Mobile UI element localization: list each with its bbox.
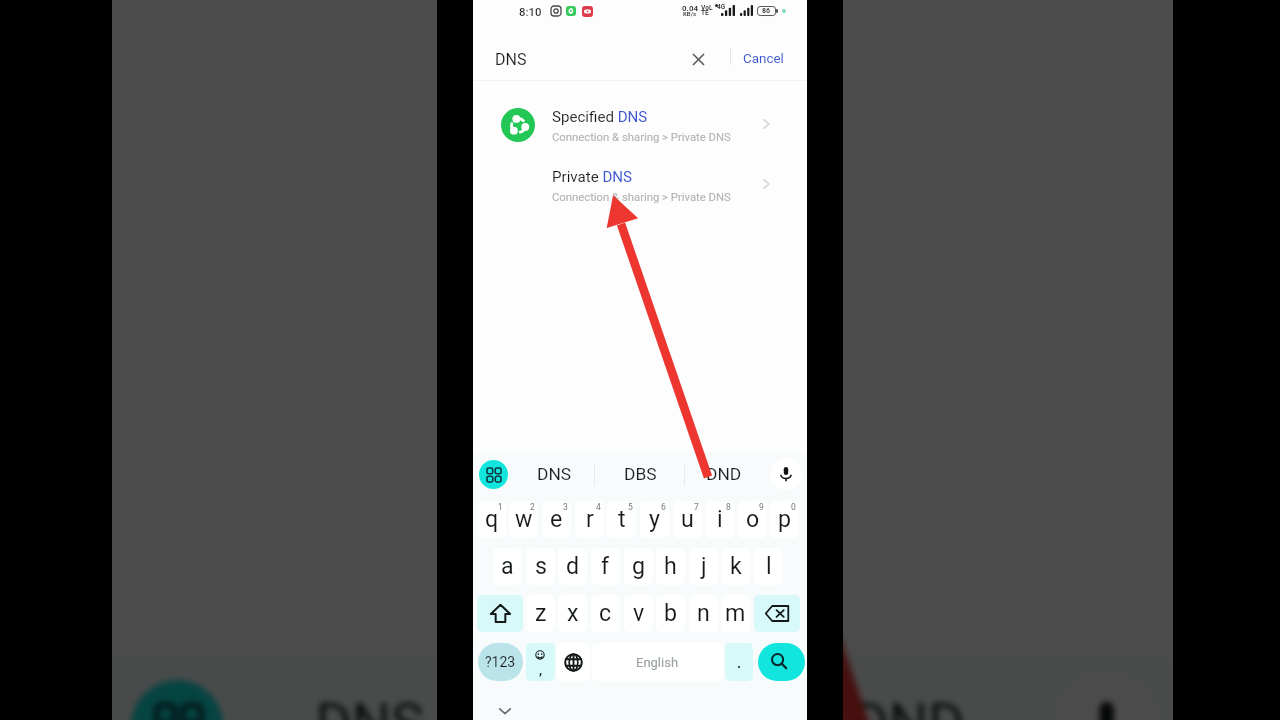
- button[interactable]: Private DNS: [473, 154, 807, 214]
- button[interactable]: Keyboard menu: [131, 680, 223, 720]
- staticText: 2: [530, 502, 535, 512]
- staticText: Specified DNS: [552, 108, 648, 126]
- button[interactable]: q: [477, 501, 506, 538]
- button[interactable]: Search: [758, 643, 805, 681]
- button[interactable]: Shift: [477, 595, 523, 632]
- staticText: k: [730, 552, 742, 579]
- staticText: n: [697, 599, 710, 626]
- button[interactable]: g: [624, 548, 653, 585]
- button[interactable]: d: [558, 548, 587, 585]
- staticText: t: [618, 505, 626, 532]
- button[interactable]: Cancel: [738, 40, 788, 78]
- staticText: y: [649, 505, 660, 532]
- button[interactable]: DBS: [598, 457, 682, 491]
- staticText: 7: [694, 502, 699, 512]
- staticText: 4: [596, 502, 601, 512]
- button[interactable]: [725, 643, 753, 681]
- button[interactable]: a: [493, 548, 522, 585]
- staticText: j: [701, 552, 707, 579]
- button[interactable]: c: [591, 595, 620, 632]
- staticText: Cancel: [743, 51, 784, 67]
- button[interactable]: DBS: [509, 670, 776, 720]
- staticText: v: [633, 599, 645, 626]
- staticText: ?123: [485, 654, 516, 670]
- button[interactable]: Voice input: [1056, 673, 1158, 720]
- button[interactable]: r: [575, 501, 604, 538]
- staticText: p: [778, 505, 792, 532]
- staticText: s: [535, 552, 547, 579]
- button[interactable]: Clear search: [681, 40, 715, 78]
- staticText: c: [599, 599, 612, 626]
- staticText: Connection & sharing > Private DNS: [552, 191, 731, 204]
- staticText: 6: [661, 502, 666, 512]
- staticText: r: [586, 505, 594, 532]
- button[interactable]: DND: [776, 670, 1043, 720]
- staticText: English: [636, 655, 679, 670]
- button[interactable]: y: [640, 501, 669, 538]
- button[interactable]: w: [509, 501, 538, 538]
- button[interactable]: Hide keyboard: [491, 699, 519, 720]
- staticText: KB/s: [683, 10, 696, 17]
- button[interactable]: s: [526, 548, 555, 585]
- button[interactable]: n: [689, 595, 718, 632]
- staticText: VoL: [701, 4, 713, 12]
- staticText: d: [566, 552, 580, 579]
- button[interactable]: Emoji: [526, 643, 555, 681]
- staticText: z: [535, 599, 547, 626]
- button[interactable]: k: [721, 548, 750, 585]
- button[interactable]: DNS: [512, 457, 596, 491]
- staticText: 9: [759, 502, 764, 512]
- button[interactable]: Keyboard menu: [479, 460, 508, 489]
- button[interactable]: j: [689, 548, 718, 585]
- button[interactable]: Backspace: [754, 595, 800, 632]
- staticText: ,: [539, 663, 543, 678]
- staticText: g: [632, 552, 646, 579]
- staticText: 0: [791, 502, 796, 512]
- staticText: o: [746, 505, 760, 532]
- button[interactable]: e: [542, 501, 571, 538]
- button[interactable]: f: [591, 548, 620, 585]
- staticText: i: [717, 505, 723, 532]
- button[interactable]: x: [558, 595, 587, 632]
- button[interactable]: ?123: [478, 643, 523, 681]
- button[interactable]: English: [592, 643, 723, 681]
- staticText: x: [567, 599, 579, 626]
- staticText: w: [515, 505, 533, 532]
- staticText: e: [550, 505, 563, 532]
- button[interactable]: p: [770, 501, 799, 538]
- button[interactable]: DND: [682, 457, 766, 491]
- button[interactable]: h: [656, 548, 685, 585]
- staticText: 1: [498, 502, 503, 512]
- staticText: a: [501, 552, 514, 579]
- button[interactable]: Specified DNS: [473, 94, 807, 154]
- staticText: q: [485, 505, 499, 532]
- staticText: DND: [852, 693, 967, 720]
- button[interactable]: v: [624, 595, 653, 632]
- button[interactable]: Change language: [557, 643, 590, 681]
- button[interactable]: u: [673, 501, 702, 538]
- button[interactable]: DNS: [236, 670, 503, 720]
- button[interactable]: Voice input: [770, 458, 802, 490]
- staticText: 4G: [717, 3, 726, 11]
- staticText: 8:10: [519, 5, 542, 18]
- button[interactable]: m: [721, 595, 750, 632]
- button[interactable]: z: [526, 595, 555, 632]
- button[interactable]: i: [705, 501, 734, 538]
- staticText: 0.04: [682, 4, 699, 13]
- staticText: f: [601, 552, 610, 579]
- staticText: DBS: [624, 464, 657, 484]
- staticText: 8: [726, 502, 731, 512]
- staticText: TE: [701, 9, 709, 17]
- button[interactable]: t: [607, 501, 636, 538]
- staticText: 86: [762, 7, 771, 15]
- staticText: DNS: [315, 693, 427, 720]
- staticText: DNS: [537, 464, 572, 484]
- staticText: l: [766, 552, 772, 579]
- staticText: m: [725, 599, 746, 626]
- staticText: DND: [706, 464, 742, 484]
- staticText: u: [681, 505, 694, 532]
- button[interactable]: b: [656, 595, 685, 632]
- button[interactable]: o: [738, 501, 767, 538]
- button[interactable]: l: [754, 548, 783, 585]
